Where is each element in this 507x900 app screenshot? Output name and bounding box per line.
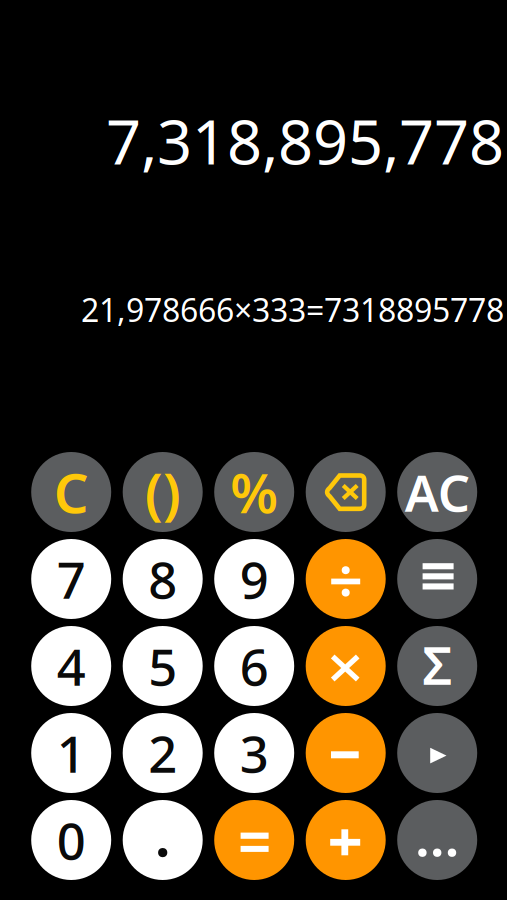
staticText: 3: [240, 719, 269, 787]
staticText: 8: [148, 545, 177, 613]
button[interactable]: Equals: [214, 800, 294, 880]
staticText: 9: [240, 545, 269, 613]
button[interactable]: 0: [31, 800, 111, 880]
button[interactable]: AC: [397, 452, 477, 532]
staticText: 0: [57, 806, 86, 874]
staticText: 7,318,895,778: [106, 100, 504, 181]
staticText: 5: [148, 632, 177, 700]
staticText: AC: [405, 458, 470, 526]
button[interactable]: More: [397, 800, 477, 880]
staticText: 4: [57, 632, 86, 700]
staticText: 7: [57, 545, 86, 613]
staticText: 6: [240, 632, 269, 700]
staticText: 1: [57, 719, 86, 787]
staticText: (): [145, 455, 181, 529]
button[interactable]: 3: [214, 713, 294, 793]
staticText: 21,978666×333=7318895778: [81, 288, 504, 331]
button[interactable]: 4: [31, 626, 111, 706]
button[interactable]: (): [123, 452, 203, 532]
button[interactable]: %: [214, 452, 294, 532]
staticText: C: [54, 456, 89, 528]
button[interactable]: 9: [214, 539, 294, 619]
button[interactable]: Divide: [306, 539, 386, 619]
button[interactable]: 7: [31, 539, 111, 619]
button[interactable]: 2: [123, 713, 203, 793]
staticText: %: [230, 456, 278, 528]
button[interactable]: Subtract: [306, 713, 386, 793]
staticText: Σ: [422, 630, 452, 700]
button[interactable]: Σ: [397, 626, 477, 706]
button[interactable]: Backspace: [306, 452, 386, 532]
staticText: 2: [148, 719, 177, 787]
button[interactable]: C: [31, 452, 111, 532]
button[interactable]: 6: [214, 626, 294, 706]
button[interactable]: 1: [31, 713, 111, 793]
button[interactable]: Add: [306, 800, 386, 880]
button[interactable]: Multiply: [306, 626, 386, 706]
button[interactable]: 8: [123, 539, 203, 619]
button[interactable]: Next: [397, 713, 477, 793]
button[interactable]: Decimal point: [123, 800, 203, 880]
button[interactable]: History: [397, 539, 477, 619]
button[interactable]: 5: [123, 626, 203, 706]
